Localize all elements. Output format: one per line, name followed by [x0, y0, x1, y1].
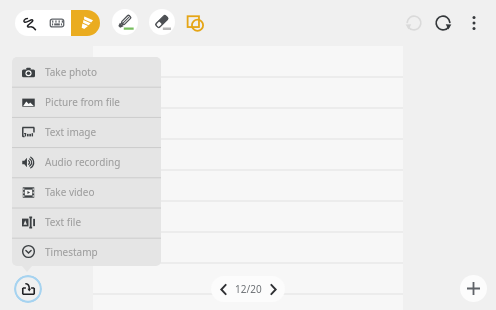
- staticText: Take photo: [45, 65, 97, 79]
- button[interactable]: Timestamp: [12, 237, 161, 266]
- button[interactable]: Picture from file: [12, 87, 161, 117]
- staticText: Picture from file: [45, 95, 120, 109]
- button[interactable]: Take video: [12, 177, 161, 207]
- button[interactable]: Redo: [429, 9, 456, 36]
- button[interactable]: Keyboard: [43, 10, 71, 36]
- button[interactable]: Text image: [12, 117, 161, 147]
- staticText: Take video: [45, 185, 95, 199]
- button[interactable]: Eraser: [149, 9, 175, 35]
- staticText: Audio recording: [45, 155, 121, 169]
- button[interactable]: Highlighter: [112, 9, 138, 35]
- button[interactable]: Take photo: [12, 57, 161, 87]
- button[interactable]: Text file: [12, 207, 161, 237]
- button[interactable]: Audio recording: [12, 147, 161, 177]
- button[interactable]: Shapes: [182, 9, 208, 35]
- staticText: Text file: [45, 215, 82, 229]
- staticText: 12/20: [235, 282, 262, 296]
- button[interactable]: Handwriting: [15, 10, 43, 36]
- staticText: Timestamp: [45, 245, 98, 259]
- button[interactable]: More options: [460, 9, 487, 36]
- button[interactable]: Add page: [460, 275, 487, 302]
- button[interactable]: Pen: [71, 10, 100, 36]
- button[interactable]: 12/20: [211, 276, 285, 302]
- button[interactable]: Insert: [14, 275, 42, 303]
- staticText: Text image: [45, 125, 97, 139]
- button[interactable]: Undo: [400, 9, 427, 36]
